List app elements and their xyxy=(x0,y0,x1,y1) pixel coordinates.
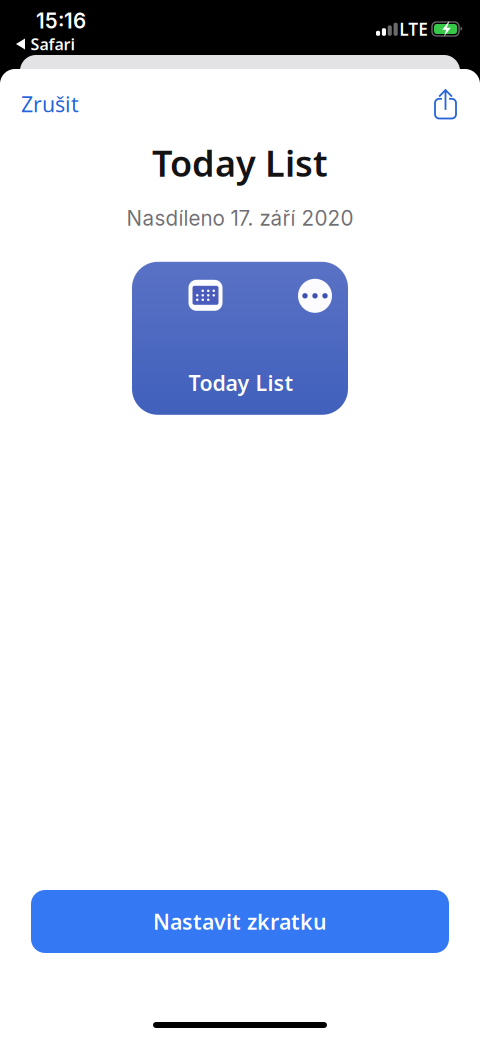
button[interactable]: Zrušit xyxy=(0,81,93,127)
staticText: Nasdíleno 17. září 2020 xyxy=(126,206,353,231)
button[interactable]: Nastavit zkratku xyxy=(31,890,449,953)
button[interactable]: Share xyxy=(420,83,480,124)
staticText: Today List xyxy=(152,139,328,187)
button[interactable]: More options xyxy=(298,262,348,313)
staticText: Safari xyxy=(30,33,75,55)
staticText: Today List xyxy=(188,368,293,397)
staticText: Zrušit xyxy=(21,90,79,118)
staticText: LTE xyxy=(399,17,428,40)
staticText: Nastavit zkratku xyxy=(153,907,327,936)
staticText: 15:16 xyxy=(36,8,86,33)
button[interactable]: Today List xyxy=(132,262,348,415)
button[interactable]: Today List xyxy=(132,262,348,415)
